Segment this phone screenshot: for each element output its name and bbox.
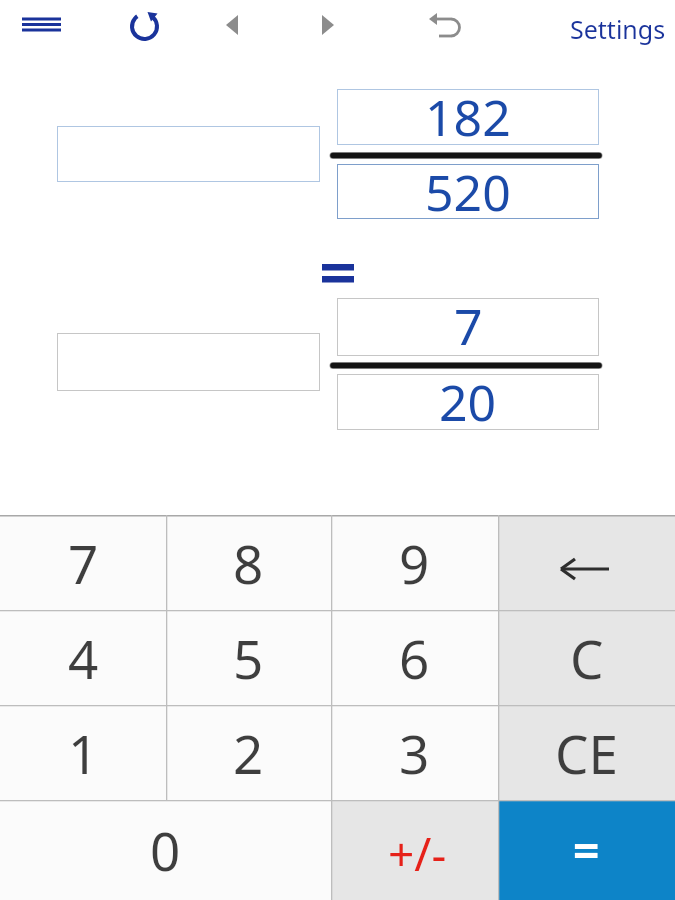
- button[interactable]: [125, 7, 165, 47]
- button[interactable]: 7: [0, 515, 166, 610]
- staticText: 9: [399, 527, 430, 599]
- button[interactable]: [57, 333, 320, 391]
- staticText: 0: [150, 814, 181, 886]
- button[interactable]: C: [498, 610, 675, 705]
- button[interactable]: CE: [498, 705, 675, 800]
- staticText: 7: [454, 292, 483, 350]
- staticText: 5: [233, 622, 264, 694]
- staticText: 1: [68, 717, 99, 789]
- staticText: CE: [555, 717, 618, 789]
- button[interactable]: 1: [0, 705, 166, 800]
- button[interactable]: 0: [0, 800, 331, 900]
- button[interactable]: 6: [331, 610, 498, 705]
- staticText: 2: [233, 717, 264, 789]
- button[interactable]: [57, 126, 320, 182]
- button[interactable]: +/-: [331, 800, 498, 900]
- button[interactable]: [498, 515, 675, 610]
- staticText: =: [573, 819, 600, 882]
- button[interactable]: 4: [0, 610, 166, 705]
- staticText: 8: [233, 527, 264, 599]
- button[interactable]: 2: [166, 705, 331, 800]
- staticText: 520: [425, 158, 511, 213]
- staticText: Settings: [570, 12, 666, 46]
- button[interactable]: 5: [166, 610, 331, 705]
- button[interactable]: =: [498, 800, 675, 900]
- button[interactable]: 182: [337, 89, 599, 145]
- button[interactable]: 8: [166, 515, 331, 610]
- button[interactable]: Settings: [570, 10, 670, 48]
- staticText: +/-: [388, 822, 447, 885]
- button[interactable]: [425, 5, 465, 45]
- button[interactable]: 3: [331, 705, 498, 800]
- staticText: 7: [68, 527, 99, 599]
- staticText: 3: [399, 717, 430, 789]
- staticText: C: [570, 622, 604, 694]
- button[interactable]: [310, 7, 346, 47]
- button[interactable]: 520: [337, 164, 599, 219]
- button[interactable]: 20: [337, 374, 599, 430]
- button[interactable]: [12, 5, 72, 45]
- staticText: 182: [425, 83, 511, 139]
- button[interactable]: [215, 7, 251, 47]
- staticText: 20: [439, 368, 497, 424]
- button[interactable]: 7: [337, 298, 599, 356]
- button[interactable]: 9: [331, 515, 498, 610]
- staticText: 6: [399, 622, 430, 694]
- staticText: 4: [68, 622, 99, 694]
